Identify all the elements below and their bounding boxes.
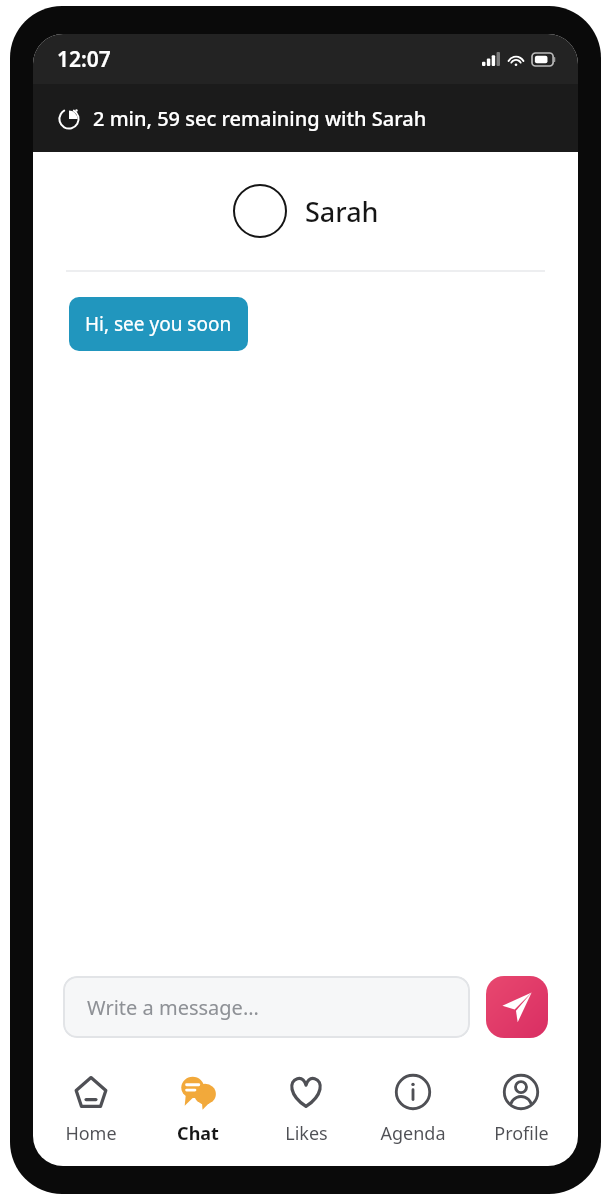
staticText: 2 min, 59 sec remaining with Sarah — [93, 105, 427, 132]
staticText: Profile — [494, 1121, 549, 1146]
button[interactable]: Sarah — [33, 152, 578, 270]
button[interactable]: Profile — [471, 1060, 571, 1156]
button[interactable]: Agenda — [363, 1060, 463, 1156]
staticText: 12:07 — [57, 45, 111, 74]
staticText: Agenda — [380, 1121, 446, 1146]
staticText: Home — [65, 1121, 117, 1146]
staticText: Chat — [177, 1121, 219, 1146]
staticText: Write a message... — [87, 994, 259, 1021]
staticText: Hi, see you soon — [85, 311, 232, 337]
button[interactable]: Write a message... — [63, 976, 470, 1038]
button[interactable]: Hi, see you soon — [69, 297, 248, 351]
button[interactable]: Chat — [148, 1060, 248, 1156]
staticText: Sarah — [305, 193, 379, 230]
button[interactable]: Home — [41, 1060, 141, 1156]
button[interactable]: Send message — [486, 976, 548, 1038]
button[interactable]: Likes — [256, 1060, 356, 1156]
staticText: Likes — [285, 1121, 328, 1146]
